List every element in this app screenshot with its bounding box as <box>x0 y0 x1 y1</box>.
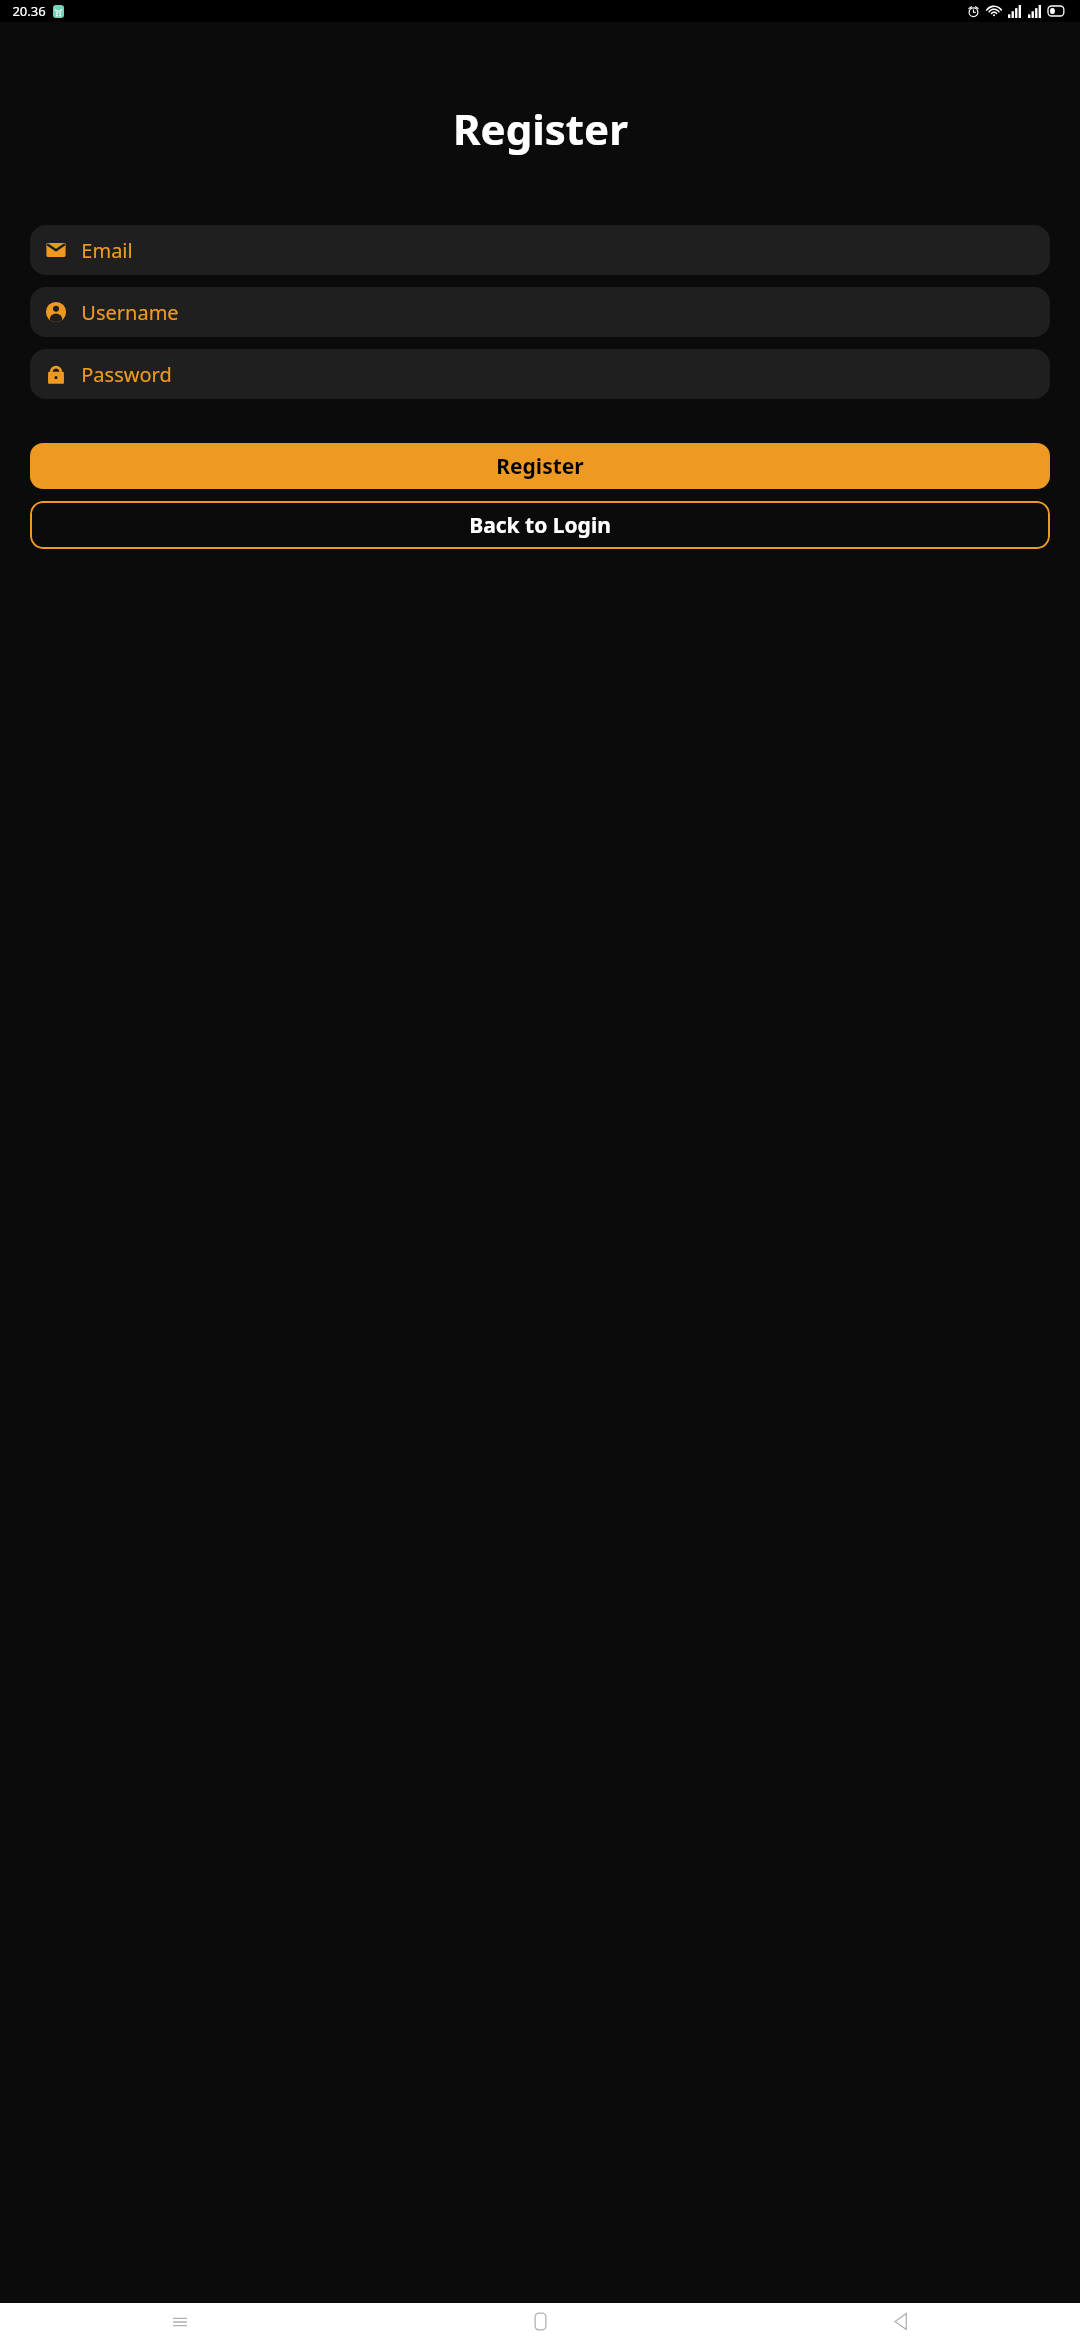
button[interactable]: Home <box>360 2303 720 2340</box>
staticText: Back to Login <box>469 511 611 540</box>
button[interactable]: Back to Login <box>30 501 1050 549</box>
staticText: Register <box>496 452 584 481</box>
button[interactable]: Register <box>30 443 1050 489</box>
staticText: Register <box>453 100 628 157</box>
staticText: Username <box>81 299 179 326</box>
staticText: 20.36 <box>12 2 46 20</box>
staticText: Password <box>81 361 172 388</box>
button[interactable]: Password <box>30 349 1050 399</box>
button[interactable]: Email <box>30 225 1050 275</box>
button[interactable]: Recent apps <box>0 2303 360 2340</box>
button[interactable]: Username <box>30 287 1050 337</box>
button[interactable]: Back <box>720 2303 1080 2340</box>
staticText: Email <box>81 237 133 264</box>
